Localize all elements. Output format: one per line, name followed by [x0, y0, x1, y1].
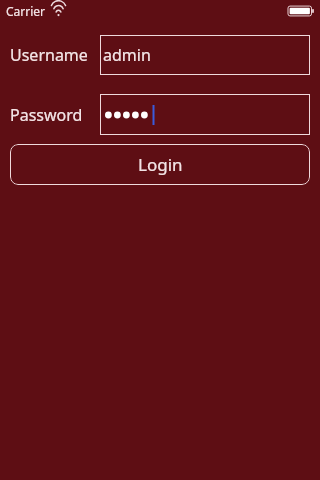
button[interactable]: admin — [100, 35, 310, 75]
button[interactable]: Password field — [100, 94, 310, 135]
staticText: Username — [10, 44, 88, 66]
staticText: Carrier — [6, 3, 46, 19]
staticText: Password — [10, 104, 83, 126]
staticText: Login — [138, 153, 183, 176]
staticText: admin — [103, 44, 151, 66]
button[interactable]: Login — [10, 144, 310, 185]
